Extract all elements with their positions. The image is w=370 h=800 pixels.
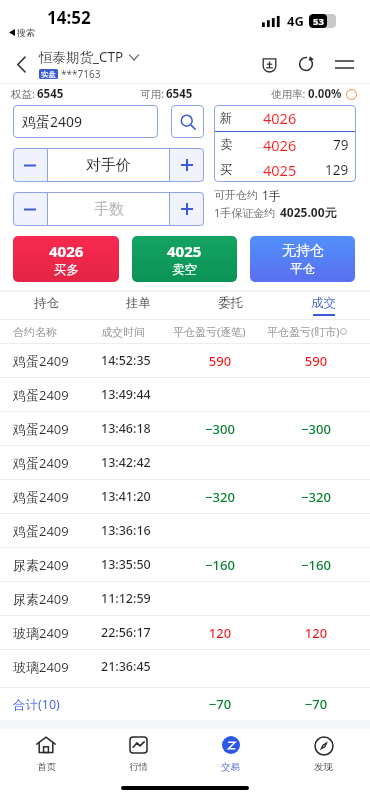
- staticText: 玻璃2409: [13, 624, 69, 642]
- staticText: 鸡蛋2409: [13, 386, 69, 404]
- staticText: 120: [174, 624, 266, 642]
- staticText: −300: [174, 420, 266, 438]
- button[interactable]: 4025: [132, 236, 237, 282]
- button[interactable]: Refresh: [293, 51, 319, 77]
- staticText: 鸡蛋2409: [13, 522, 69, 540]
- staticText: 鸡蛋2409: [22, 112, 83, 131]
- button[interactable]: 买: [220, 157, 349, 182]
- staticText: 买: [220, 162, 233, 178]
- button[interactable]: Back: [8, 51, 34, 77]
- button[interactable]: 尿素2409: [0, 548, 370, 581]
- staticText: 成交: [311, 295, 336, 311]
- staticText: 11:12:59: [101, 590, 151, 607]
- staticText: 尿素2409: [13, 556, 69, 574]
- button[interactable]: 鸡蛋2409: [0, 378, 370, 411]
- staticText: 尿素2409: [13, 590, 69, 608]
- button[interactable]: 手数: [48, 192, 169, 226]
- staticText: 卖: [220, 137, 233, 153]
- staticText: 发现: [314, 761, 333, 773]
- button[interactable]: 成交: [277, 292, 370, 319]
- staticText: 平仓盈亏(盯市): [267, 324, 340, 339]
- button[interactable]: 对手价: [48, 148, 169, 182]
- staticText: 买多: [54, 262, 79, 278]
- staticText: −320: [174, 488, 266, 506]
- button[interactable]: 交易: [184, 729, 277, 786]
- button[interactable]: Decrease: [13, 148, 47, 182]
- button[interactable]: 鸡蛋2409: [0, 412, 370, 445]
- button[interactable]: 玻璃2409: [0, 650, 370, 683]
- staticText: 委托: [218, 295, 243, 311]
- staticText: −300: [270, 420, 362, 438]
- button[interactable]: 无持仓: [250, 236, 355, 282]
- staticText: −70: [270, 695, 362, 713]
- staticText: 13:36:16: [101, 522, 151, 539]
- button[interactable]: 发现: [277, 729, 370, 786]
- staticText: 手数: [94, 200, 124, 219]
- button[interactable]: Increase: [170, 148, 204, 182]
- button[interactable]: Menu: [331, 51, 357, 77]
- staticText: 4G: [287, 12, 304, 30]
- staticText: 4026: [263, 135, 297, 155]
- staticText: 持仓: [34, 295, 59, 311]
- button[interactable]: 卖: [220, 132, 349, 157]
- staticText: 可用:: [140, 87, 164, 101]
- staticText: 14:52: [47, 6, 91, 29]
- staticText: 合计(10): [13, 696, 60, 713]
- staticText: 挂单: [126, 295, 151, 311]
- staticText: 平仓盈亏(逐笔): [173, 324, 246, 339]
- staticText: 鸡蛋2409: [13, 352, 69, 370]
- staticText: 成交时间: [101, 325, 145, 339]
- staticText: 卖空: [172, 262, 197, 278]
- staticText: 4026: [49, 241, 84, 261]
- staticText: 590: [270, 352, 362, 370]
- staticText: 权益:: [11, 87, 35, 101]
- button[interactable]: 鸡蛋2409: [0, 446, 370, 479]
- staticText: 4025.00元: [280, 204, 337, 220]
- staticText: 129: [325, 161, 349, 179]
- button[interactable]: 尿素2409: [0, 582, 370, 615]
- button[interactable]: Decrease: [13, 192, 47, 226]
- button[interactable]: 挂单: [92, 292, 184, 319]
- staticText: 13:41:20: [101, 488, 151, 505]
- staticText: 使用率:: [271, 87, 306, 101]
- button[interactable]: 持仓: [0, 292, 92, 319]
- button[interactable]: 鸡蛋2409: [0, 514, 370, 547]
- staticText: 鸡蛋2409: [13, 488, 69, 506]
- button[interactable]: Increase: [170, 192, 204, 226]
- staticText: 13:49:44: [101, 386, 151, 403]
- staticText: −160: [174, 556, 266, 574]
- staticText: 13:35:50: [101, 556, 151, 573]
- staticText: −320: [270, 488, 362, 506]
- button[interactable]: 4026: [13, 236, 119, 282]
- staticText: 4025: [167, 241, 202, 261]
- staticText: 0.00%: [308, 86, 342, 102]
- button[interactable]: 鸡蛋2409: [0, 480, 370, 513]
- button[interactable]: Bank transfer: [256, 51, 282, 77]
- button[interactable]: 玻璃2409: [0, 616, 370, 649]
- button[interactable]: Search: [171, 105, 204, 138]
- staticText: 可开仓约: [214, 188, 258, 202]
- staticText: 590: [174, 352, 266, 370]
- staticText: 14:52:35: [101, 352, 151, 369]
- staticText: ***7163: [61, 67, 101, 81]
- button[interactable]: 委托: [184, 292, 277, 319]
- staticText: 合约名称: [13, 325, 57, 339]
- button[interactable]: 鸡蛋2409: [0, 344, 370, 377]
- staticText: 1手保证金约: [214, 205, 276, 220]
- staticText: 搜索: [17, 27, 35, 38]
- staticText: −70: [174, 695, 266, 713]
- staticText: 恒泰期货_CTP: [39, 48, 124, 66]
- staticText: 交易: [221, 761, 240, 773]
- staticText: 4025: [263, 160, 297, 180]
- button[interactable]: 行情: [92, 729, 184, 786]
- staticText: 实盘: [41, 70, 56, 79]
- staticText: 新: [220, 110, 233, 126]
- staticText: 玻璃2409: [13, 658, 69, 676]
- staticText: 22:56:17: [101, 624, 151, 641]
- button[interactable]: 新: [220, 105, 349, 131]
- staticText: 鸡蛋2409: [13, 454, 69, 472]
- staticText: 79: [333, 136, 349, 154]
- staticText: 53: [313, 15, 324, 28]
- staticText: 无持仓: [282, 242, 324, 260]
- button[interactable]: 首页: [0, 729, 92, 786]
